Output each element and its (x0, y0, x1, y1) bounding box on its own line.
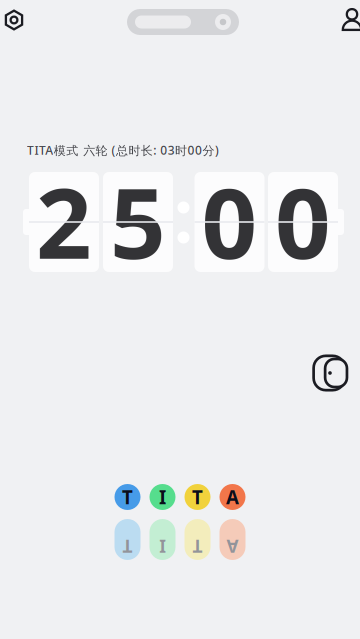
button[interactable]: Settings (0, 5, 29, 35)
button[interactable]: Exit (308, 352, 352, 394)
staticText: I (159, 485, 166, 509)
staticText: 0 (275, 156, 331, 286)
staticText: 5 (110, 156, 166, 286)
staticText: A (226, 535, 238, 558)
staticText: A (226, 485, 239, 509)
staticText: T (192, 535, 202, 558)
staticText: I (159, 535, 166, 558)
staticText: T (122, 485, 133, 509)
staticText: T (192, 485, 203, 509)
staticText: T (122, 535, 132, 558)
staticText: TITA模式 六轮 (总时长: 03时00分) (27, 142, 219, 158)
staticText: 2 (36, 156, 92, 286)
button[interactable]: Profile (337, 5, 360, 35)
staticText: 0 (201, 156, 257, 286)
